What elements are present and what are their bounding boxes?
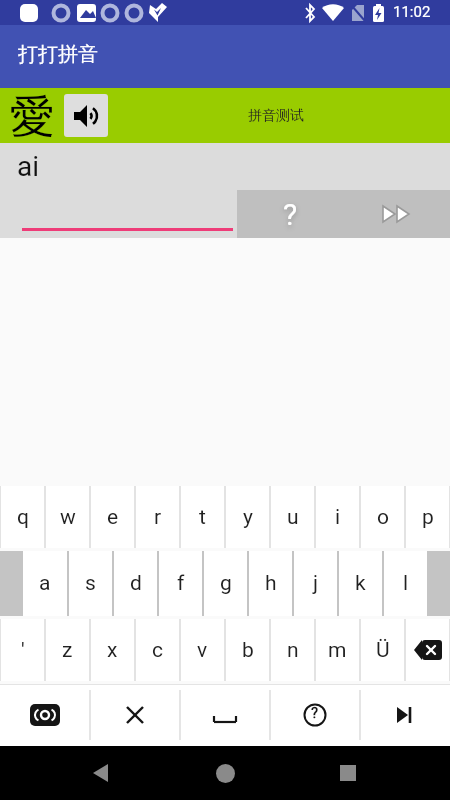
staticText: u [287,505,299,530]
button[interactable] [64,94,108,137]
button[interactable]: b [226,619,269,681]
button[interactable]: o [361,486,404,548]
staticText: 拼音测试 [248,107,304,125]
button[interactable] [197,746,253,800]
staticText: a [39,571,51,596]
staticText: 愛 [10,89,55,144]
staticText: d [130,571,142,596]
staticText: 11:02 [393,3,431,21]
button[interactable]: m [316,619,359,681]
staticText: v [197,638,208,663]
staticText: z [62,638,73,663]
button[interactable]: n [271,619,314,681]
button[interactable]: f [159,551,202,616]
button[interactable]: v [181,619,224,681]
staticText: y [243,505,253,530]
staticText: f [177,571,185,596]
staticText: c [152,638,163,663]
button[interactable]: d [114,551,157,616]
staticText: h [265,571,277,596]
button[interactable]: q [1,486,44,548]
button[interactable]: y [226,486,269,548]
staticText: q [17,505,29,530]
staticText: i [335,505,341,530]
button[interactable] [406,619,449,681]
staticText: ? [283,197,298,232]
staticText: m [328,638,347,663]
button[interactable] [270,684,360,746]
button[interactable] [72,746,128,800]
button[interactable] [344,190,450,238]
button[interactable]: c [136,619,179,681]
button[interactable]: Ü [361,619,404,681]
button[interactable]: p [406,486,449,548]
staticText: o [377,505,389,530]
staticText: b [242,638,254,663]
button[interactable]: z [46,619,89,681]
button[interactable]: i [316,486,359,548]
staticText: ? [311,704,319,722]
button[interactable]: j [294,551,337,616]
staticText: ' [21,638,25,663]
button[interactable]: g [204,551,247,616]
button[interactable]: w [46,486,89,548]
staticText: j [313,571,319,596]
staticText: p [422,505,434,530]
button[interactable] [320,746,376,800]
button[interactable] [360,684,450,746]
staticText: Ü [376,638,390,663]
staticText: l [403,571,409,596]
button[interactable]: ' [1,619,44,681]
button[interactable]: h [249,551,292,616]
staticText: k [355,571,366,596]
button[interactable]: k [339,551,382,616]
staticText: 打打拼音 [18,42,98,67]
button[interactable]: s [69,551,112,616]
button[interactable]: l [384,551,427,616]
button[interactable] [90,684,180,746]
button[interactable]: x [91,619,134,681]
button[interactable]: u [271,486,314,548]
button[interactable]: e [91,486,134,548]
button[interactable]: r [136,486,179,548]
staticText: e [107,505,119,530]
button[interactable]: t [181,486,224,548]
button[interactable] [180,684,270,746]
button[interactable]: a [23,551,67,616]
staticText: t [199,505,206,530]
staticText: g [220,571,232,596]
staticText: w [60,505,76,530]
staticText: r [154,505,162,530]
staticText: s [85,571,96,596]
staticText: x [107,638,118,663]
staticText: ai [17,150,40,183]
button[interactable] [0,684,90,746]
button[interactable]: ? [237,190,343,238]
staticText: n [287,638,299,663]
